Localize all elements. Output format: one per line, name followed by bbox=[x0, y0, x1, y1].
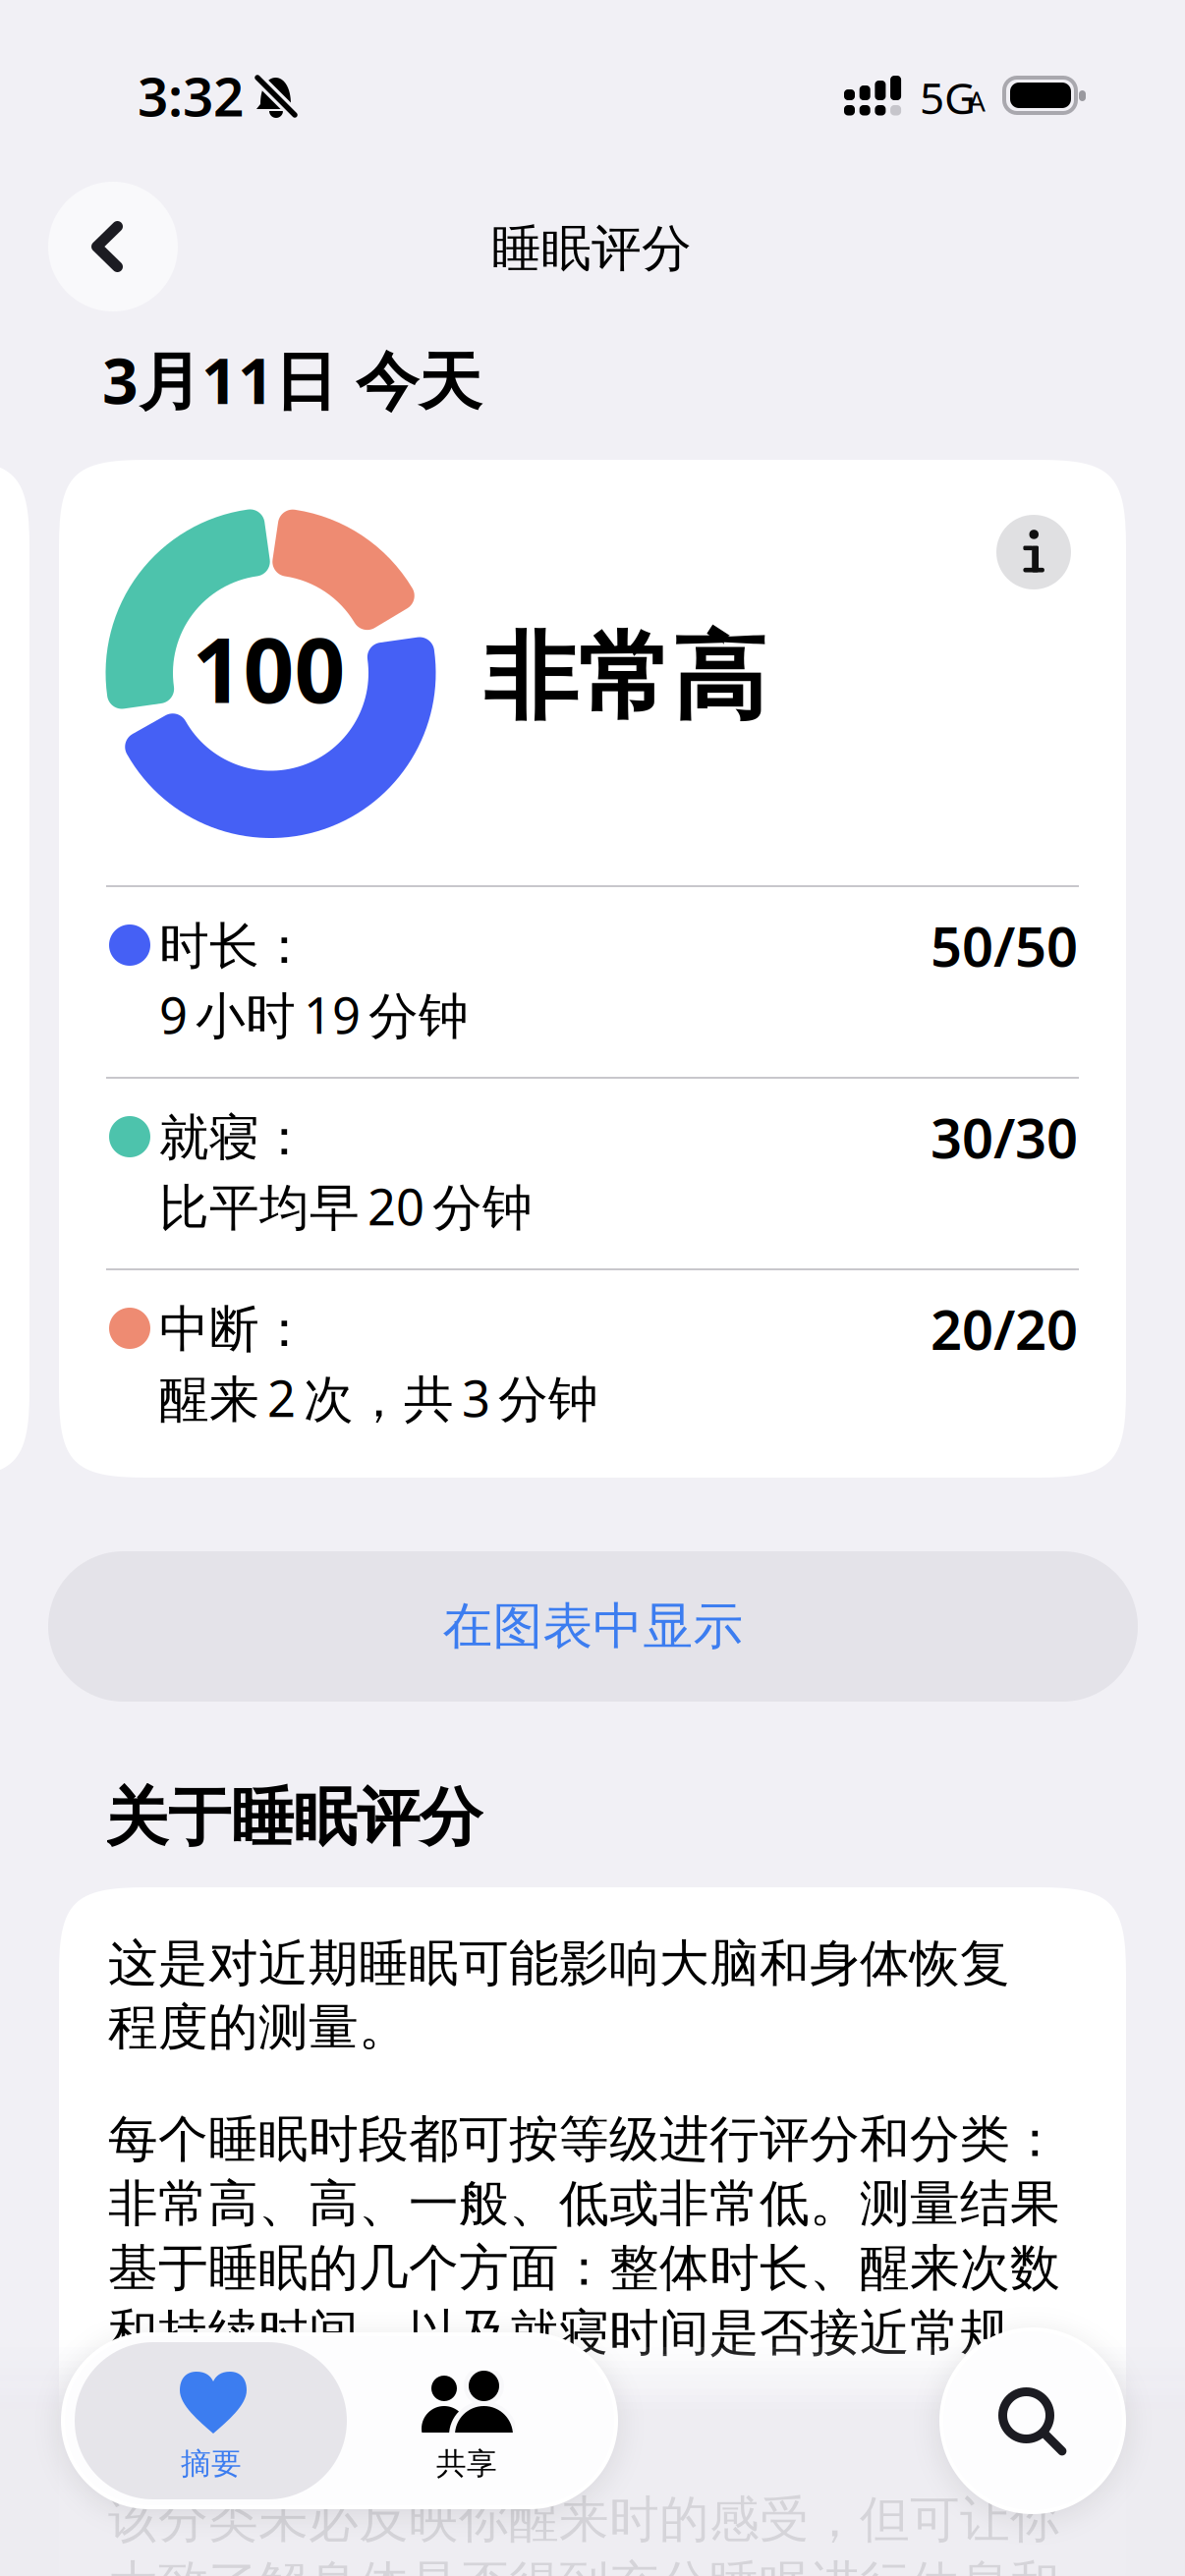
button[interactable]: 摘要 bbox=[75, 2334, 347, 2507]
button[interactable]: 搜索 bbox=[941, 2329, 1124, 2512]
staticText: 100 bbox=[192, 609, 345, 727]
staticText: 3:32 bbox=[138, 60, 244, 131]
staticText: 和持续时间，以及就寝时间是否接近常规 bbox=[108, 2302, 1010, 2363]
staticText: 基于睡眠的几个方面：整体时长、醒来次数 bbox=[108, 2238, 1060, 2299]
staticText: 3月11日 今天 bbox=[102, 338, 481, 421]
staticText: 就寝： bbox=[159, 1107, 310, 1168]
staticText: 程度的测量。 bbox=[108, 1997, 409, 2058]
staticText: 9 小时 19 分钟 bbox=[159, 981, 469, 1048]
staticText: A bbox=[968, 83, 986, 119]
staticText: 50/50 bbox=[931, 909, 1078, 982]
staticText: 30/30 bbox=[931, 1100, 1078, 1173]
staticText: 20/20 bbox=[931, 1292, 1078, 1365]
staticText: 中断： bbox=[159, 1299, 310, 1360]
button[interactable]: 返回 bbox=[48, 182, 178, 311]
button[interactable]: 关于睡眠评分 bbox=[996, 515, 1071, 589]
staticText: 每个睡眠时段都可按等级进行评分和分类： bbox=[108, 2109, 1060, 2170]
staticText: 时长： bbox=[159, 916, 310, 977]
staticText: 5G bbox=[920, 69, 976, 126]
button[interactable]: 共享 bbox=[331, 2334, 616, 2507]
staticText: 这是对近期睡眠可能影响大脑和身体恢复 bbox=[108, 1933, 1010, 1994]
staticText: 大致了解身体是否得到充分睡眠进行休息和 bbox=[108, 2554, 1060, 2576]
staticText: 醒来 2 次，共 3 分钟 bbox=[159, 1365, 598, 1431]
button[interactable]: 在图表中显示 bbox=[48, 1551, 1138, 1702]
staticText: 比平均早 20 分钟 bbox=[159, 1173, 533, 1239]
staticText: 该分类未必反映你醒来时的感受，但可让你 bbox=[108, 2489, 1060, 2550]
staticText: 非常高、高、一般、低或非常低。测量结果 bbox=[108, 2173, 1060, 2234]
staticText: 睡眠评分 bbox=[491, 218, 692, 279]
staticText: 摘要 bbox=[181, 2445, 242, 2482]
staticText: 在图表中显示 bbox=[443, 1596, 743, 1657]
staticText: 非常高 bbox=[483, 620, 766, 736]
staticText: 关于睡眠评分 bbox=[105, 1779, 482, 1856]
staticText: 共享 bbox=[436, 2445, 497, 2482]
